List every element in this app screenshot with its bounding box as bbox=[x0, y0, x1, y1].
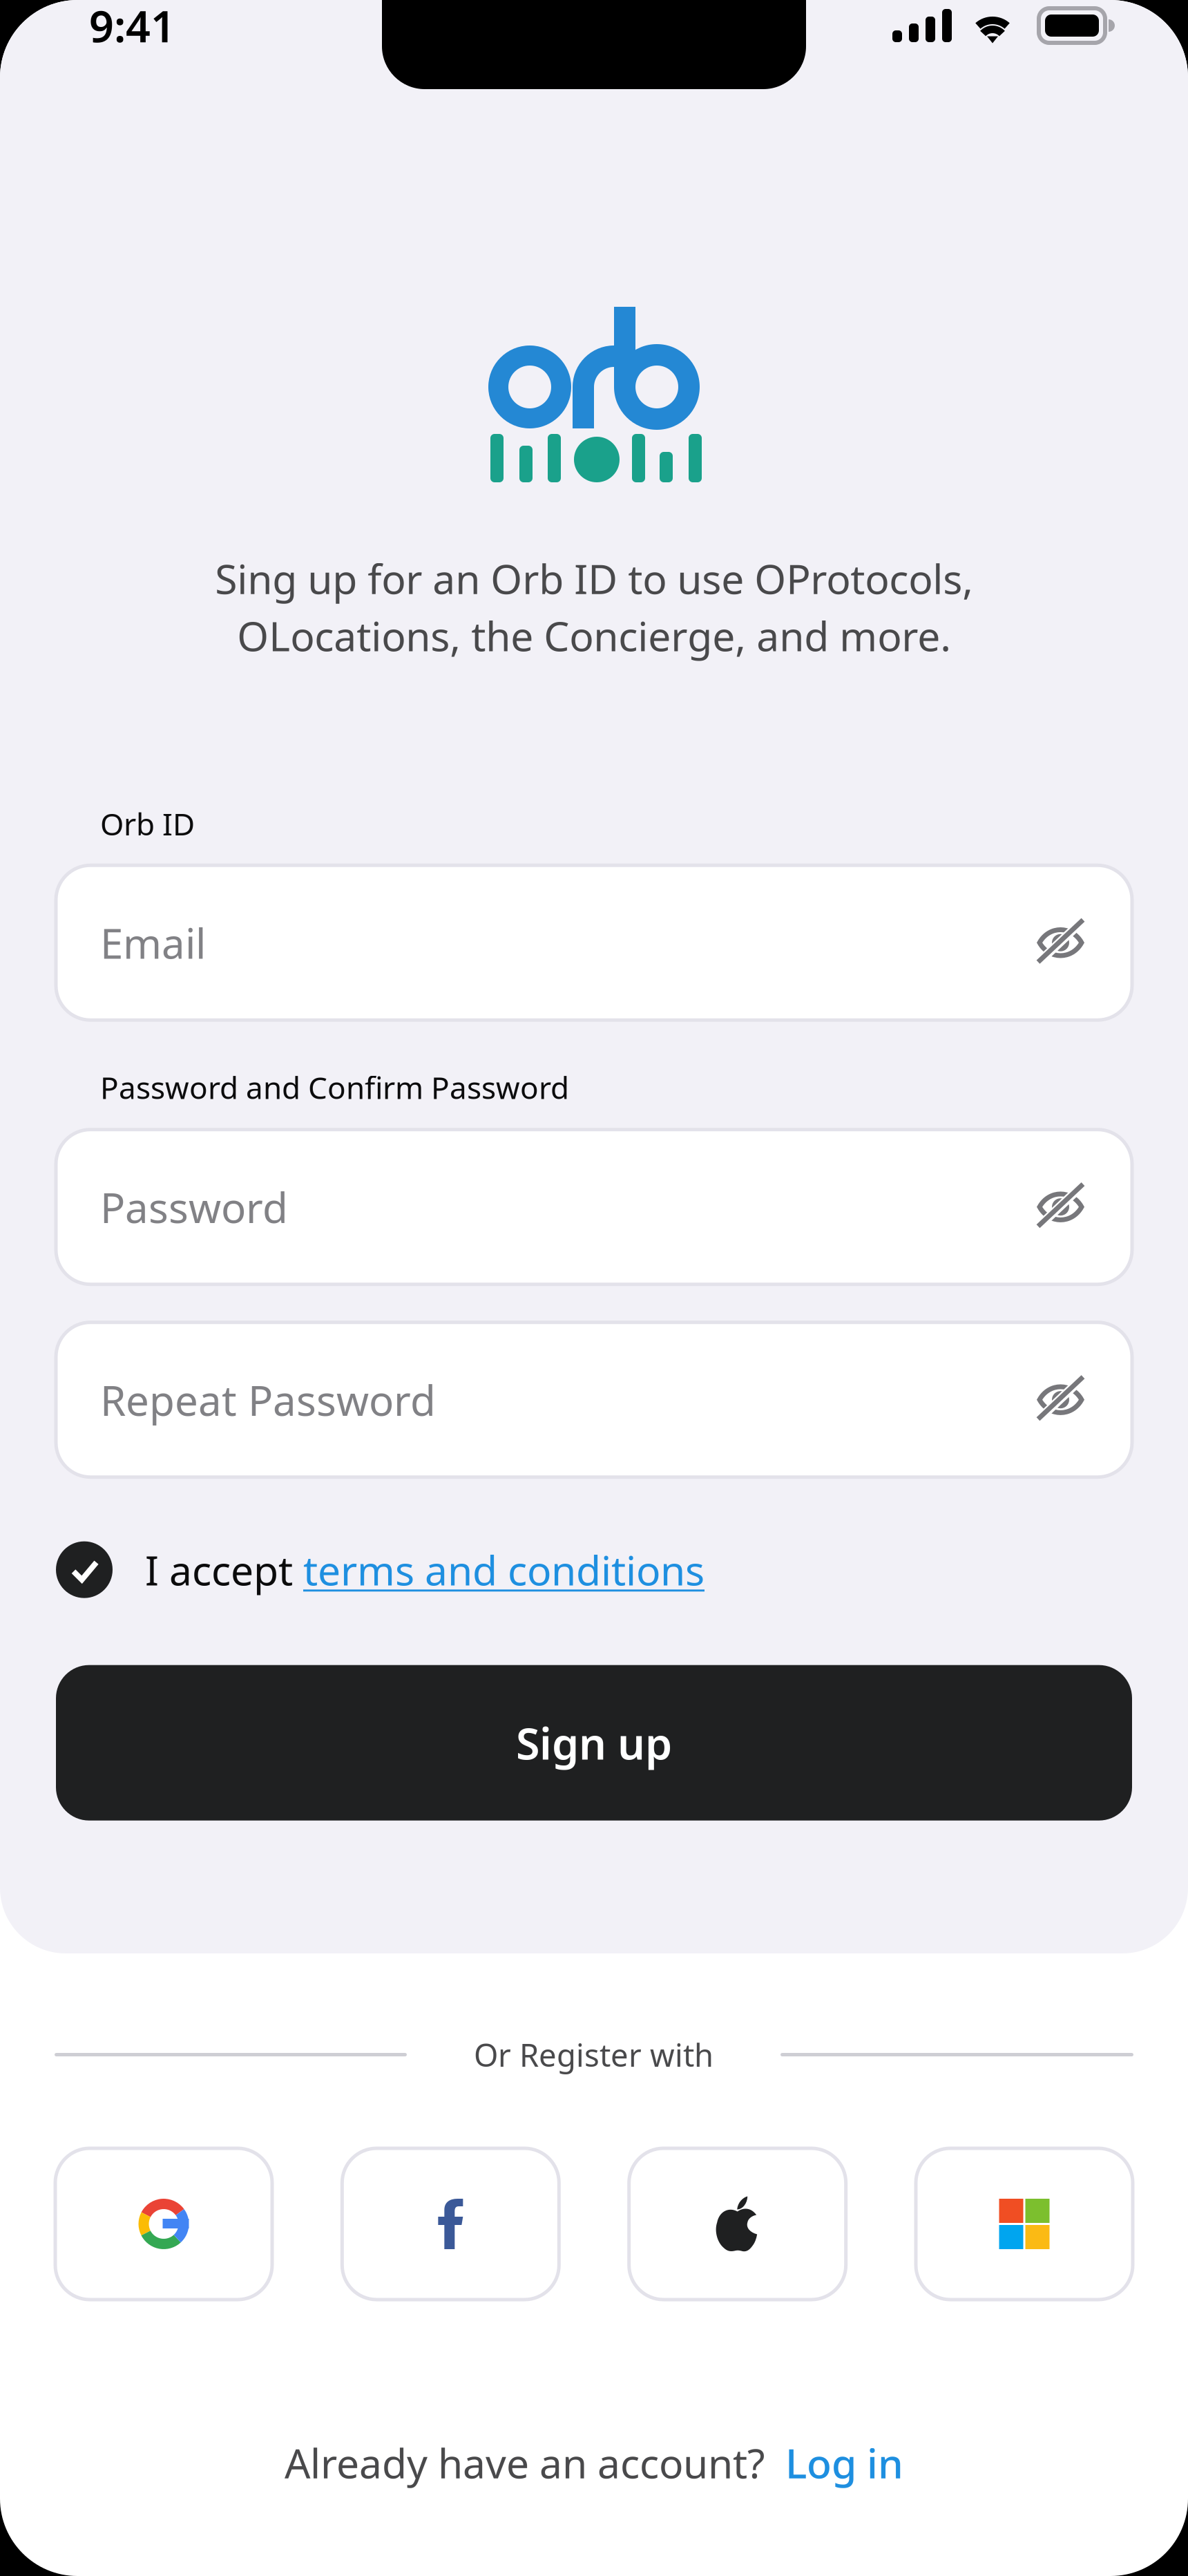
button[interactable]: Show Password bbox=[1026, 1178, 1095, 1236]
staticText: Password bbox=[100, 1179, 288, 1234]
button[interactable]: Sign up with Facebook bbox=[342, 2148, 559, 2300]
staticText: Repeat Password bbox=[100, 1372, 436, 1427]
staticText: Or Register with bbox=[474, 2034, 713, 2075]
staticText: Sing up for an Orb ID to use OProtocols,… bbox=[215, 551, 973, 663]
staticText: Password and Confirm Password bbox=[100, 1067, 569, 1107]
staticText: Sign up bbox=[516, 1714, 672, 1772]
button[interactable]: Show Repeat Password bbox=[1026, 1371, 1095, 1429]
button[interactable]: Sign up with Apple bbox=[629, 2148, 846, 2300]
button[interactable]: Sign up with Google bbox=[55, 2148, 272, 2300]
staticText: terms and conditions bbox=[303, 1543, 705, 1597]
button[interactable]: Sign up bbox=[56, 1665, 1132, 1821]
staticText: I accept bbox=[145, 1543, 303, 1597]
staticText: Orb ID bbox=[100, 803, 195, 844]
button[interactable]: Sign up with Microsoft bbox=[916, 2148, 1133, 2300]
staticText: Log in bbox=[785, 2436, 903, 2490]
button[interactable]: terms and conditions bbox=[303, 1543, 705, 1597]
staticText: 9:41 bbox=[89, 0, 175, 54]
staticText: Already have an account? bbox=[285, 2436, 785, 2490]
button[interactable]: Show Email bbox=[1026, 914, 1095, 972]
button[interactable]: Log in bbox=[785, 2436, 903, 2490]
button[interactable]: Accept terms and conditions bbox=[56, 1541, 113, 1598]
staticText: Email bbox=[100, 915, 206, 970]
